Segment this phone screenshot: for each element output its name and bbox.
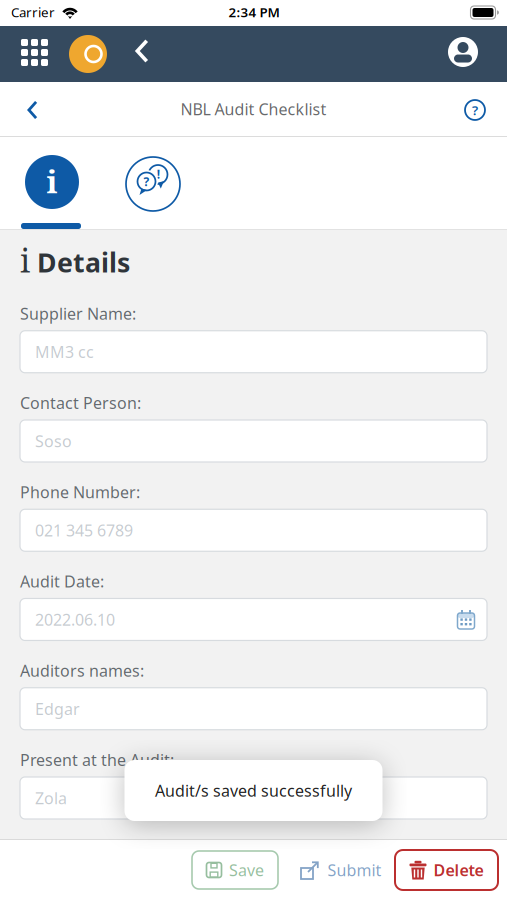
button[interactable]: Back <box>135 39 148 63</box>
staticText: Auditors names: <box>20 660 144 681</box>
staticText: Soso <box>35 430 72 452</box>
button[interactable]: Delete <box>395 850 498 890</box>
staticText: 2:34 PM <box>228 3 279 21</box>
staticText: 021 345 6789 <box>35 520 133 541</box>
button[interactable]: Edgar <box>20 688 487 730</box>
staticText: NBL Audit Checklist <box>180 98 326 120</box>
staticText: Edgar <box>35 698 80 719</box>
button[interactable]: Soso <box>20 420 487 462</box>
button[interactable]: Save <box>192 851 278 889</box>
staticText: MM3 cc <box>35 341 94 362</box>
staticText: Contact Person: <box>20 392 141 413</box>
button[interactable]: Help <box>464 99 486 121</box>
staticText: Save <box>229 859 264 881</box>
button[interactable]: Questions <box>125 156 181 212</box>
button[interactable]: Back <box>27 100 37 119</box>
staticText: i <box>46 160 57 202</box>
button[interactable]: 021 345 6789 <box>20 509 487 551</box>
button[interactable]: 2022.06.10 <box>20 598 487 640</box>
button[interactable]: Submit <box>286 851 396 889</box>
button[interactable]: Details <box>25 155 79 209</box>
staticText: i Details <box>20 239 130 281</box>
button[interactable]: MM3 cc <box>20 331 487 373</box>
staticText: Phone Number: <box>20 481 140 503</box>
staticText: Submit <box>327 859 381 881</box>
staticText: Zola <box>35 787 67 809</box>
button[interactable]: Apps <box>21 39 48 66</box>
staticText: Delete <box>433 859 483 881</box>
button[interactable]: Zola <box>20 777 487 819</box>
staticText: 2022.06.10 <box>35 609 115 630</box>
staticText: Present at the Audit: <box>20 749 174 770</box>
staticText: Audit Date: <box>20 571 104 592</box>
staticText: ? <box>472 101 478 119</box>
staticText: ? <box>143 173 149 189</box>
staticText: Carrier <box>11 3 55 21</box>
button[interactable]: Profile <box>448 37 478 67</box>
button[interactable]: Home <box>69 35 107 73</box>
staticText: ! <box>157 166 160 182</box>
staticText: Audit/s saved successfully <box>155 780 352 801</box>
staticText: Supplier Name: <box>20 303 136 324</box>
